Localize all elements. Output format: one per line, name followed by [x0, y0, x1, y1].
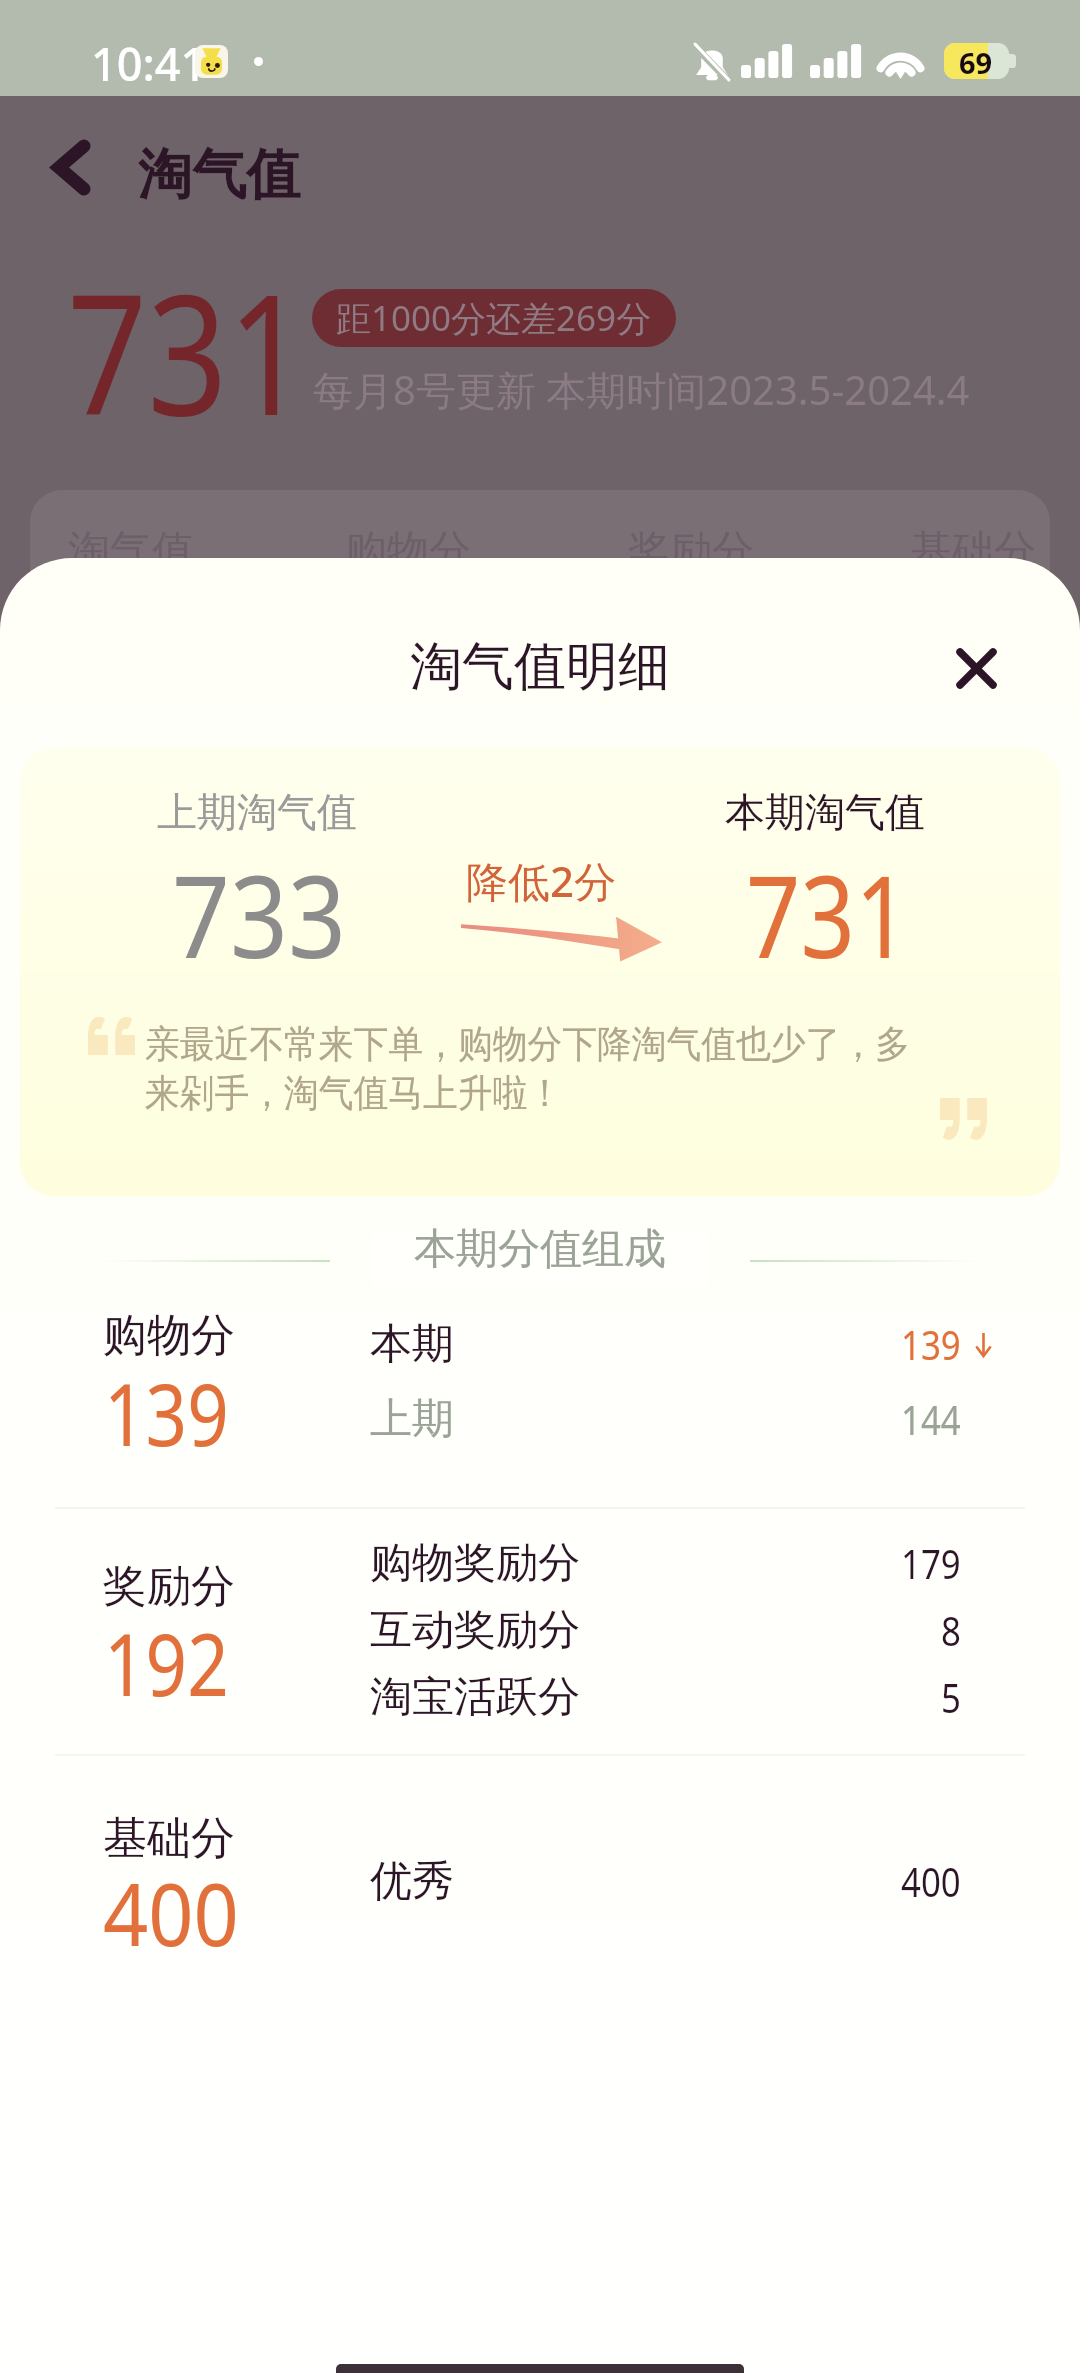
button[interactable]: Back — [30, 126, 112, 208]
staticText: 降低2分 — [466, 852, 617, 909]
button[interactable]: 本期 — [370, 1316, 961, 1372]
staticText: 距1000分还差269分 — [336, 294, 652, 342]
button[interactable]: 优秀 — [370, 1853, 961, 1909]
staticText: 5 — [941, 1670, 961, 1724]
staticText: 731 — [67, 238, 308, 464]
button[interactable]: 淘宝活跃分 — [370, 1669, 961, 1725]
staticText: 购物分 — [103, 1308, 235, 1363]
staticText: 本期淘气值 — [725, 787, 925, 837]
staticText: 400 — [103, 1854, 239, 1971]
staticText: 基础分 — [910, 525, 1036, 578]
staticText: 淘气值 — [138, 141, 300, 209]
staticText: 139 — [104, 1354, 229, 1471]
staticText: 互动奖励分 — [370, 1604, 580, 1657]
staticText: 69 — [959, 43, 993, 79]
staticText: 亲最近不常来下单，购物分下降淘气值也少了，多 来剁手，淘气值马上升啦！ — [145, 1020, 968, 1118]
staticText: 上期淘气值 — [157, 787, 357, 837]
staticText: 每月8号更新 本期时间2023.5-2024.4 — [313, 362, 970, 417]
button[interactable]: Close — [932, 624, 1020, 712]
staticText: 淘气值明细 — [410, 634, 670, 700]
staticText: 400 — [901, 1854, 961, 1908]
staticText: 144 — [901, 1392, 961, 1446]
staticText: 淘宝活跃分 — [370, 1671, 580, 1724]
button[interactable]: 上期 — [370, 1391, 961, 1447]
staticText: 192 — [104, 1604, 229, 1721]
staticText: 179 — [901, 1536, 961, 1590]
staticText: 8 — [941, 1603, 961, 1657]
staticText: 基础分 — [103, 1811, 235, 1866]
staticText: 奖励分 — [628, 525, 754, 578]
staticText: 奖励分 — [103, 1559, 235, 1614]
staticText: 10:41 — [91, 33, 207, 94]
button[interactable]: 互动奖励分 — [370, 1602, 961, 1658]
staticText: 139 — [901, 1317, 961, 1371]
staticText: 上期 — [370, 1393, 454, 1446]
staticText: 731 — [746, 836, 910, 991]
staticText: 购物分 — [345, 525, 471, 578]
staticText: 733 — [172, 836, 346, 991]
staticText: 购物奖励分 — [370, 1537, 580, 1590]
staticText: 优秀 — [370, 1855, 454, 1908]
staticText: 本期 — [370, 1318, 454, 1371]
button[interactable]: 购物奖励分 — [370, 1535, 961, 1591]
staticText: 本期分值组成 — [414, 1223, 666, 1276]
staticText: 淘气值 — [68, 525, 194, 578]
